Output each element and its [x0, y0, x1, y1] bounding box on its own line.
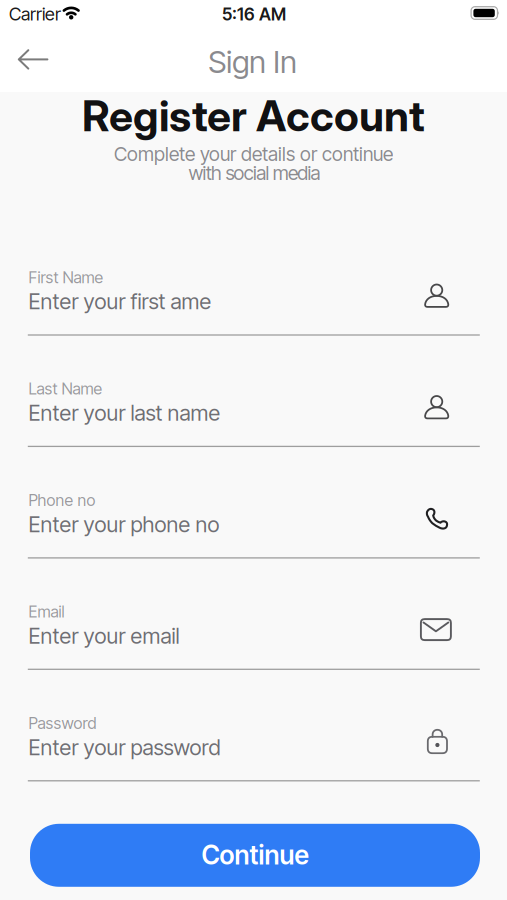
staticText: Enter your last name	[28, 400, 220, 426]
staticText: Register Account	[82, 90, 425, 142]
staticText: Continue	[201, 839, 308, 871]
staticText: Sign In	[208, 43, 297, 80]
staticText: First Name	[28, 268, 103, 287]
staticText: Last Name	[28, 379, 102, 398]
staticText: Phone no	[28, 491, 95, 510]
staticText: Password	[28, 713, 96, 733]
staticText: Email	[28, 602, 64, 621]
staticText: Enter your phone no	[28, 511, 219, 537]
staticText: 5:16 AM	[222, 4, 286, 25]
staticText: Carrier	[9, 3, 61, 25]
staticText: Enter your email	[28, 623, 179, 649]
staticText: Enter your password	[28, 734, 220, 760]
staticText: Complete your details or continue	[114, 142, 393, 166]
staticText: with social media	[188, 161, 321, 185]
staticText: Enter your first ame	[28, 288, 211, 314]
